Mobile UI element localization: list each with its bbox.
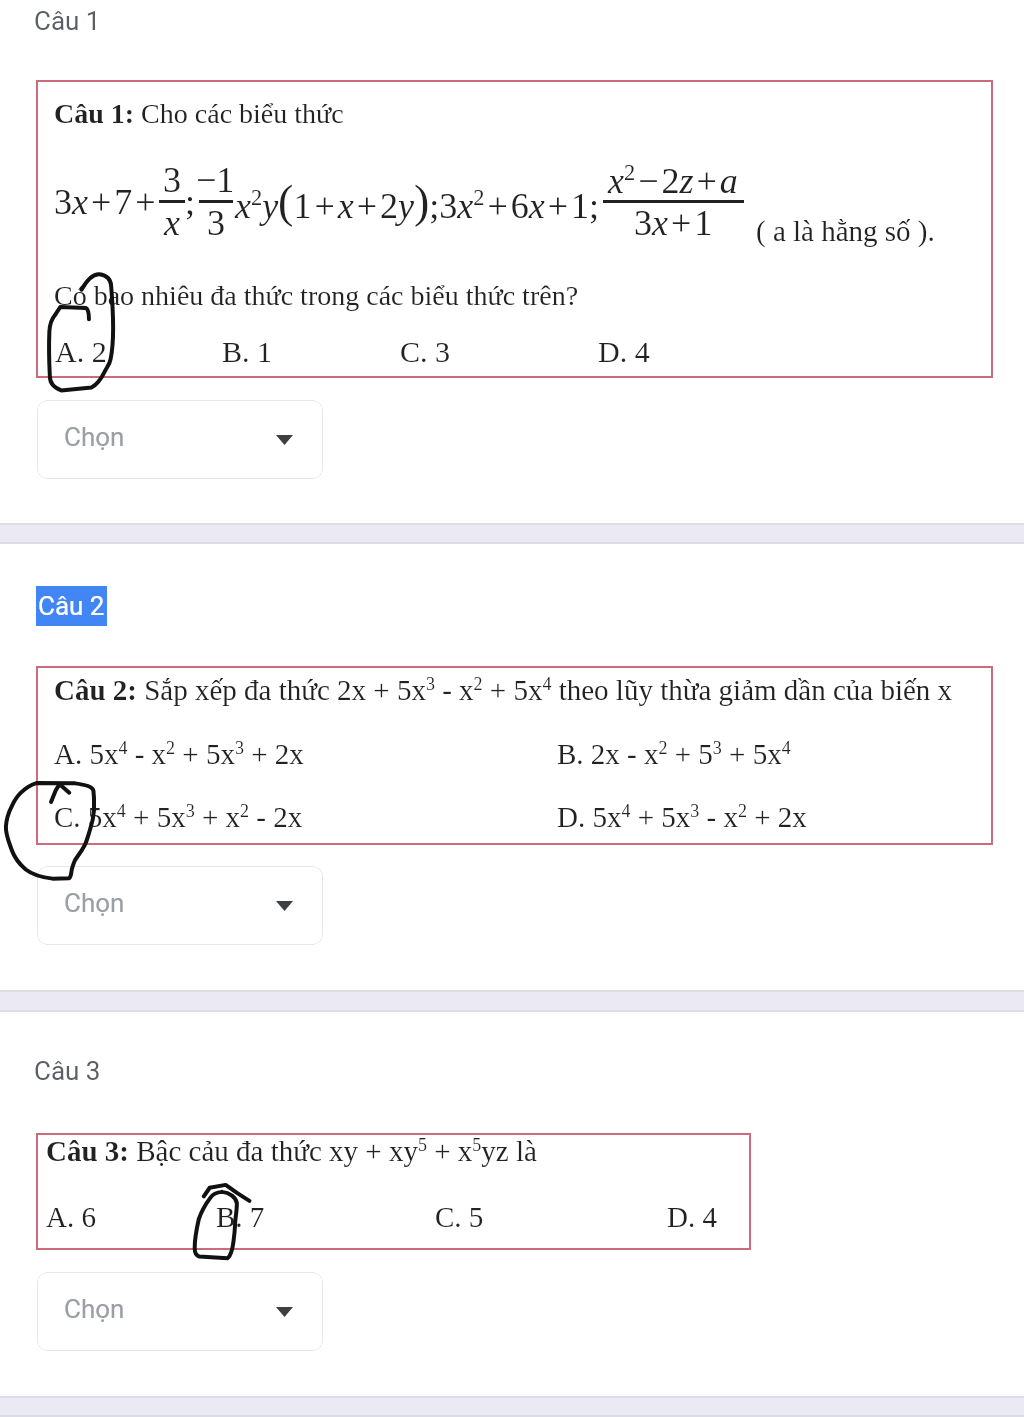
- staticText: Chọn: [64, 422, 125, 452]
- staticText: Câu 3: Bậc cảu đa thức xy + xy5 + x5yz l…: [46, 1135, 537, 1167]
- staticText: Chọn: [64, 1294, 125, 1324]
- staticText: Câu 3: [34, 1056, 101, 1086]
- button[interactable]: Chọn: [37, 1272, 323, 1351]
- staticText: ;: [185, 182, 196, 222]
- button[interactable]: Câu 3: Bậc cảu đa thức xy + xy5 + x5yz l…: [36, 1133, 751, 1250]
- button[interactable]: Câu 2: Sắp xếp đa thức 2x + 5x3 - x2 + 5…: [36, 666, 993, 845]
- staticText: Câu 2: Sắp xếp đa thức 2x + 5x3 - x2 + 5…: [54, 674, 953, 706]
- staticText: 3: [163, 160, 181, 200]
- staticText: A. 5x4 - x2 + 5x3 + 2x: [54, 738, 304, 770]
- staticText: Câu 1: [34, 6, 101, 36]
- staticText: x2y(1 + x + 2y);3x2 + 6x + 1;: [235, 176, 600, 227]
- staticText: x: [164, 203, 180, 243]
- staticText: D. 4: [667, 1201, 717, 1233]
- staticText: −1: [196, 160, 235, 200]
- staticText: x2 − 2z + a: [608, 160, 738, 200]
- staticText: A. 2: [55, 335, 107, 368]
- staticText: Câu 1: Cho các biểu thức: [54, 98, 344, 129]
- staticText: C. 5x4 + 5x3 + x2 - 2x: [54, 801, 303, 833]
- staticText: D. 4: [598, 335, 650, 368]
- staticText: ( a là hằng số ).: [756, 215, 935, 247]
- staticText: C. 5: [435, 1201, 484, 1233]
- button[interactable]: Câu 2: [38, 591, 105, 621]
- button[interactable]: Chọn: [37, 400, 323, 479]
- staticText: D. 5x4 + 5x3 - x2 + 2x: [557, 801, 807, 833]
- staticText: Chọn: [64, 888, 125, 918]
- staticText: B. 2x - x2 + 53 + 5x4: [557, 738, 791, 770]
- staticText: A. 6: [46, 1201, 96, 1233]
- button[interactable]: Câu 1: Cho các biểu thức: [36, 80, 993, 378]
- staticText: C. 3: [400, 335, 451, 368]
- staticText: 3: [207, 203, 225, 243]
- staticText: 3x + 1: [634, 203, 713, 243]
- staticText: B. 7: [216, 1201, 265, 1233]
- staticText: 3x + 7 +: [54, 182, 159, 222]
- staticText: B. 1: [222, 335, 273, 368]
- staticText: Câu 2: [38, 591, 105, 621]
- button[interactable]: Chọn: [37, 866, 323, 945]
- staticText: Có bao nhiêu đa thức trong các biểu thức…: [54, 280, 579, 311]
